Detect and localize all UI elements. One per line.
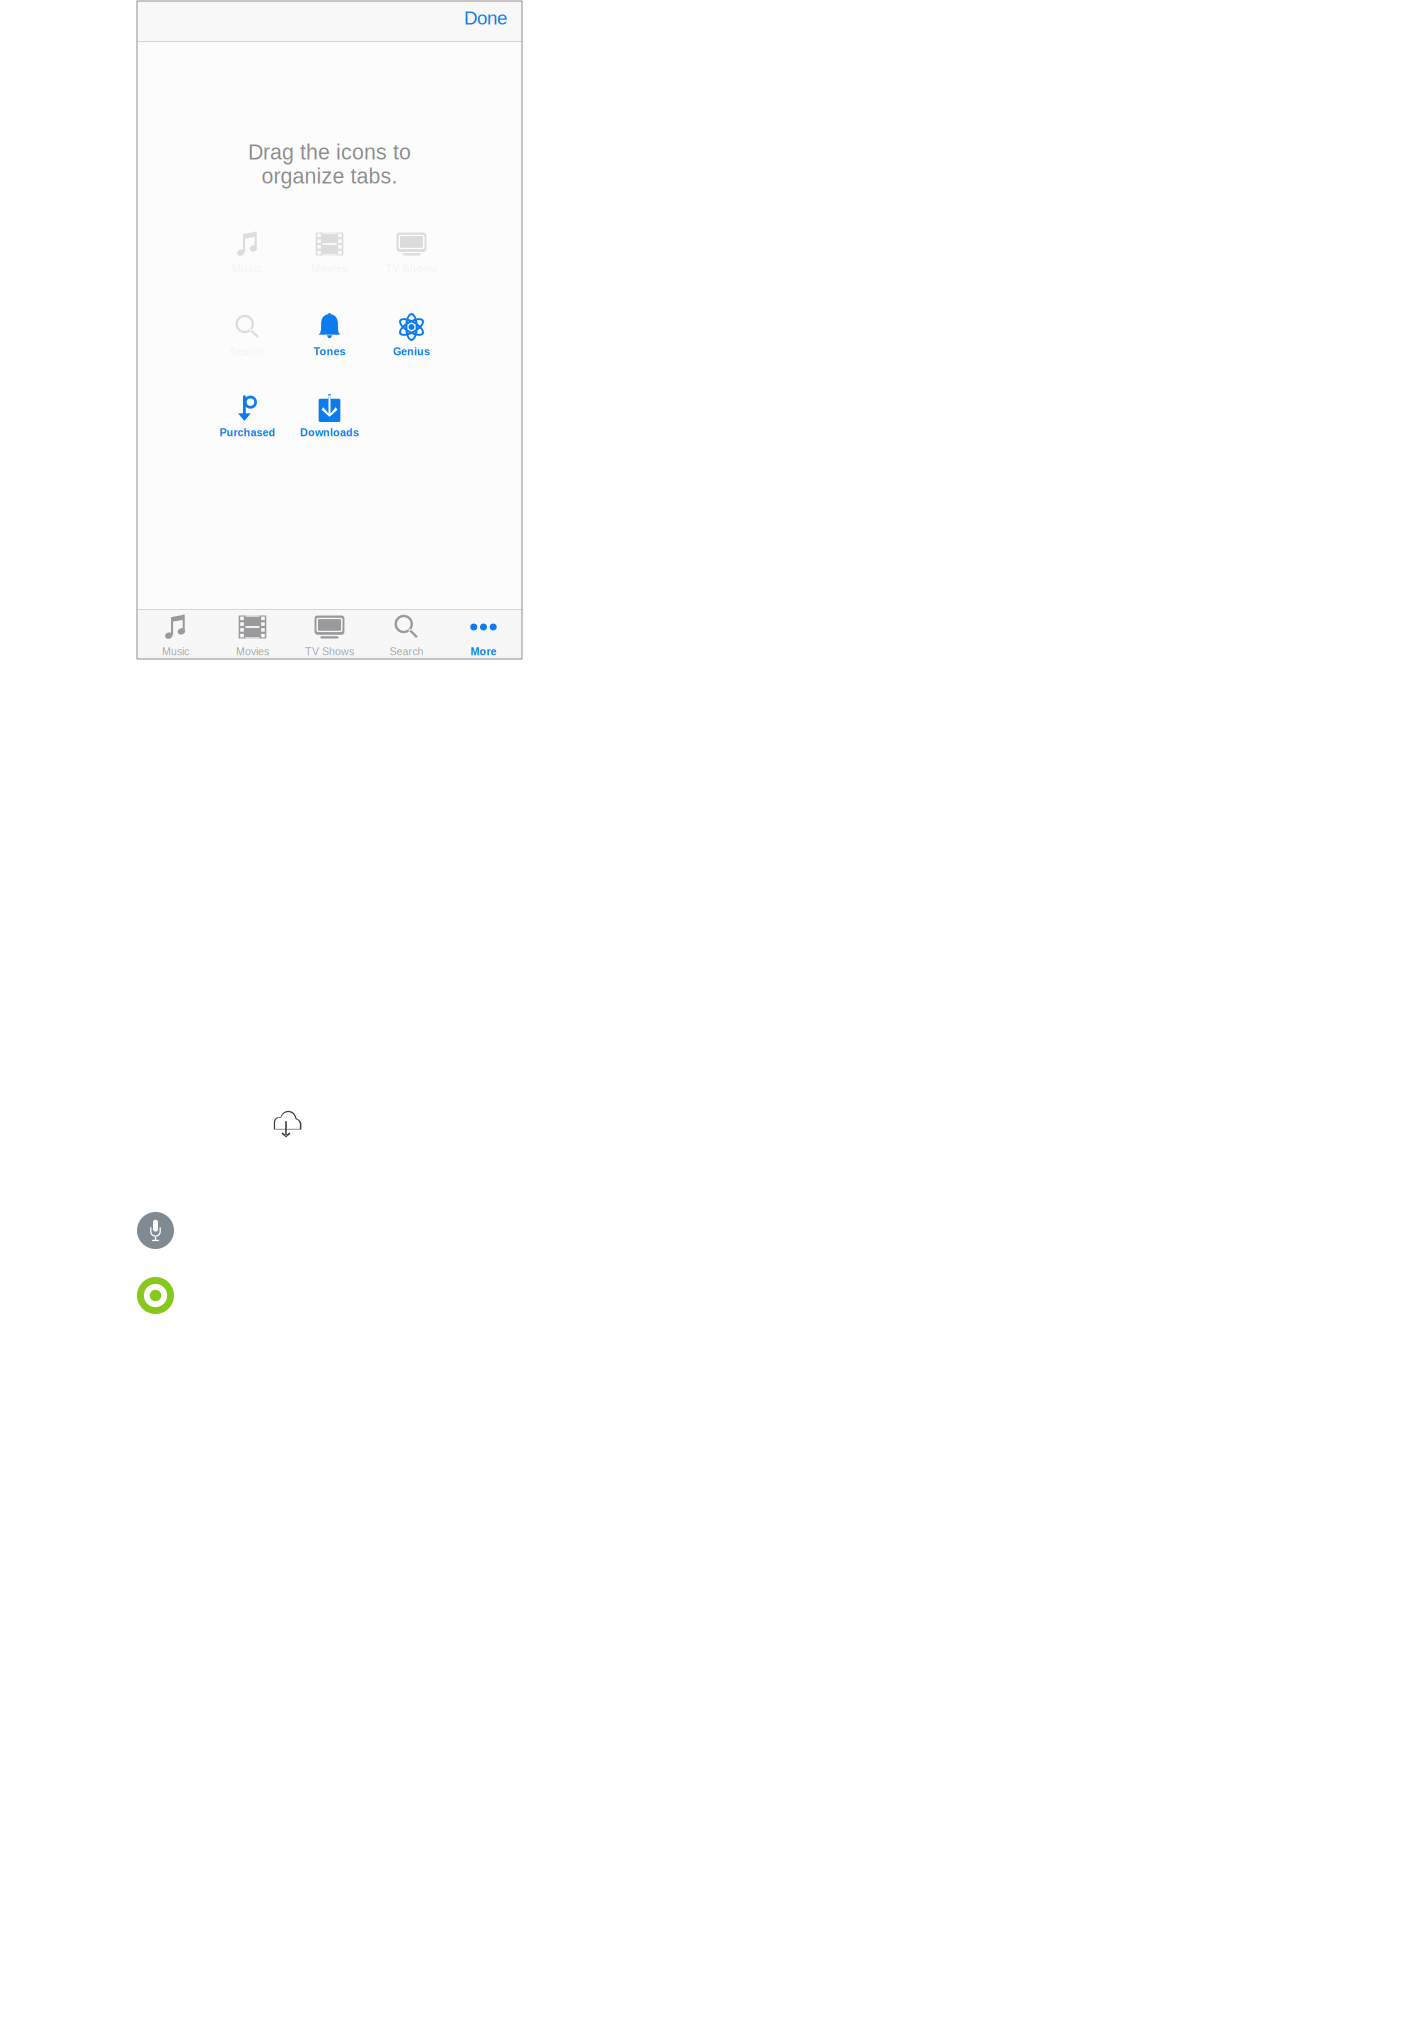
staticText: Tones bbox=[313, 345, 345, 357]
button[interactable]: Tones bbox=[288, 312, 370, 356]
staticText: Genius bbox=[393, 345, 430, 357]
button[interactable]: Genius bbox=[370, 312, 452, 356]
staticText: Purchased bbox=[219, 426, 275, 438]
staticText: Movies bbox=[236, 645, 269, 657]
button[interactable]: Purchased bbox=[206, 393, 288, 437]
staticText: TV Shows bbox=[305, 645, 354, 657]
button[interactable]: Movies bbox=[288, 229, 370, 273]
button[interactable]: Search bbox=[206, 312, 288, 356]
button[interactable]: Music bbox=[206, 229, 288, 273]
button[interactable]: Search bbox=[368, 610, 445, 659]
staticText: Music bbox=[162, 645, 189, 657]
staticText: Done bbox=[464, 8, 507, 28]
button[interactable]: TV Shows bbox=[291, 610, 368, 659]
staticText: organize tabs. bbox=[261, 164, 397, 188]
staticText: Downloads bbox=[300, 426, 359, 438]
button[interactable]: Downloads bbox=[288, 393, 370, 437]
staticText: Drag the icons to bbox=[248, 140, 411, 164]
staticText: More bbox=[470, 645, 496, 657]
button[interactable]: Movies bbox=[214, 610, 291, 659]
button[interactable]: Done bbox=[464, 1, 522, 37]
staticText: Search bbox=[389, 645, 423, 657]
button[interactable]: More bbox=[445, 610, 522, 659]
button[interactable]: Music bbox=[137, 610, 214, 659]
button[interactable]: TV Shows bbox=[370, 229, 452, 273]
